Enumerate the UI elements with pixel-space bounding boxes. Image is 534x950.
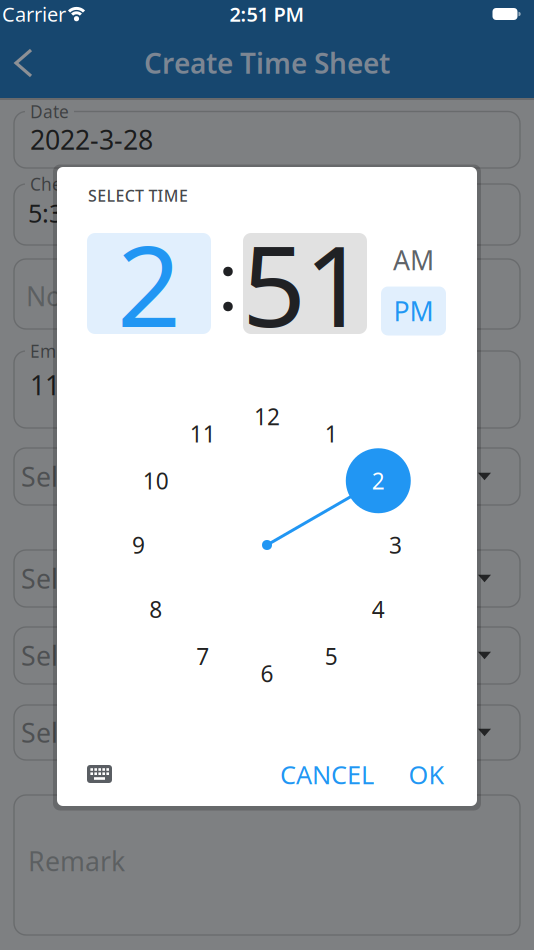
staticText: 7 — [196, 641, 209, 671]
staticText: 8 — [149, 594, 162, 624]
staticText: 2022-3-28 — [30, 122, 153, 157]
button[interactable]: Switch to text input — [87, 765, 112, 783]
staticText: 3 — [389, 530, 402, 560]
staticText: Check In Time — [30, 172, 146, 195]
staticText: 1 — [325, 419, 338, 449]
staticText: Select — [21, 459, 96, 494]
staticText: 5 — [325, 641, 338, 671]
button[interactable]: OK — [408, 758, 444, 791]
staticText: 2 — [117, 209, 181, 358]
button[interactable]: PM — [381, 286, 446, 335]
staticText: 51 — [242, 209, 368, 358]
staticText: PM — [393, 293, 433, 329]
staticText: 5:30 PM — [28, 196, 122, 230]
staticText: Employee ID — [30, 339, 134, 362]
button[interactable]: 51 — [243, 233, 367, 334]
staticText: 10 — [143, 466, 169, 496]
staticText: Select — [21, 561, 96, 596]
staticText: Remark — [28, 843, 125, 879]
staticText: Select — [21, 638, 96, 673]
staticText: 6 — [260, 658, 273, 688]
button[interactable]: Back — [4, 41, 48, 85]
staticText: 4 — [372, 594, 385, 624]
staticText: 9 — [132, 530, 145, 560]
button[interactable]: CANCEL — [280, 758, 374, 791]
staticText: Select — [21, 715, 96, 750]
staticText: CANCEL — [280, 758, 374, 791]
button[interactable]: 2 — [87, 233, 211, 334]
staticText: 1100 — [30, 367, 90, 403]
staticText: SELECT TIME — [88, 185, 188, 206]
staticText: Create Time Sheet — [144, 44, 390, 82]
staticText: AM — [393, 242, 434, 278]
staticText: Date — [30, 100, 69, 123]
staticText: 12 — [254, 401, 280, 431]
staticText: Carrier — [2, 1, 66, 27]
button[interactable]: AM — [381, 235, 446, 284]
staticText: OK — [408, 758, 444, 791]
staticText: 2 — [372, 466, 385, 496]
staticText: 2:51 PM — [229, 1, 304, 27]
staticText: 11 — [190, 419, 216, 449]
staticText: Notes — [26, 278, 100, 314]
